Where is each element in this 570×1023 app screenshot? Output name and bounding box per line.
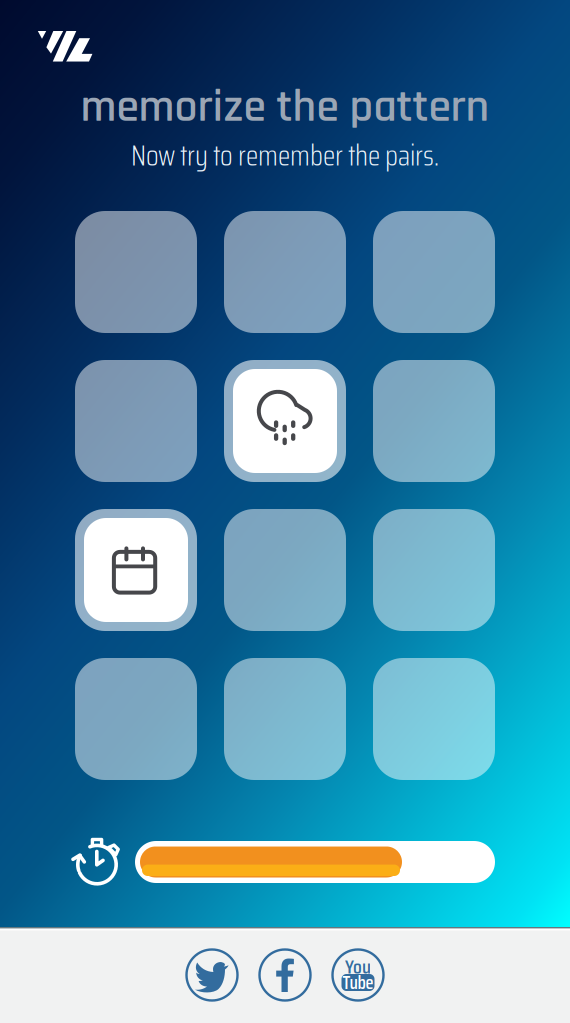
button[interactable]: Card 3 xyxy=(373,211,495,333)
button[interactable]: Card 6 xyxy=(373,360,495,482)
button[interactable]: Card 9 xyxy=(373,509,495,631)
button[interactable]: Card 10 xyxy=(75,658,197,780)
button[interactable]: Facebook xyxy=(248,946,321,1004)
button[interactable]: Twitter xyxy=(175,946,248,1004)
button[interactable]: Card 5 xyxy=(224,360,346,482)
button[interactable]: Card 2 xyxy=(224,211,346,333)
button[interactable]: Card 4 xyxy=(75,360,197,482)
button[interactable]: Card 7 xyxy=(75,509,197,631)
staticText: Now try to remember the pairs. xyxy=(131,133,439,178)
button[interactable]: Card 11 xyxy=(224,658,346,780)
staticText: Tube xyxy=(342,968,373,997)
button[interactable]: Card 8 xyxy=(224,509,346,631)
staticText: You xyxy=(345,951,371,982)
staticText: memorize the pattern xyxy=(80,78,489,137)
button[interactable]: Card 1 xyxy=(75,211,197,333)
button[interactable]: Card 12 xyxy=(373,658,495,780)
button[interactable]: YouTube xyxy=(321,946,394,1004)
